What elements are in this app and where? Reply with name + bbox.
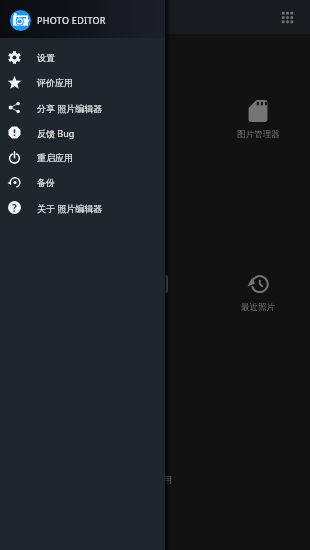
button[interactable]: 重启应用 — [0, 145, 165, 170]
staticText: 备份 — [37, 177, 55, 188]
staticText: ? — [12, 201, 17, 214]
staticText: 相机拍照 — [35, 129, 69, 140]
button[interactable]: 相机拍照 — [7, 85, 97, 143]
button[interactable]: 反馈 Bug — [0, 120, 165, 145]
staticText: 最近照片 — [241, 302, 275, 313]
staticText: 关于 照片编辑器 — [37, 202, 103, 214]
button[interactable]: 备份 — [0, 170, 165, 195]
staticText: 反馈 Bug — [37, 127, 75, 139]
button[interactable]: Apps — [275, 5, 299, 29]
button[interactable]: 图片管理器 — [213, 85, 303, 143]
staticText: PHOTO EDITOR — [37, 14, 106, 26]
button[interactable]: 编辑 — [110, 85, 200, 143]
button[interactable]: ? — [0, 195, 165, 220]
button[interactable]: 最近照片 — [213, 258, 303, 316]
button[interactable]: 分享 照片编辑器 — [0, 95, 165, 120]
button[interactable]: 更多应用 — [110, 431, 200, 489]
button[interactable]: 设置 — [0, 45, 165, 70]
staticText: 设置 — [37, 52, 55, 63]
staticText: 评价应用 — [37, 77, 73, 88]
button[interactable]: 滤镜 — [110, 258, 200, 316]
staticText: 图片管理器 — [237, 129, 280, 140]
button[interactable]: 评价应用 — [0, 70, 165, 95]
staticText: 重启应用 — [37, 152, 73, 163]
staticText: 分享 照片编辑器 — [37, 102, 103, 114]
staticText: 更多应用 — [138, 475, 172, 486]
